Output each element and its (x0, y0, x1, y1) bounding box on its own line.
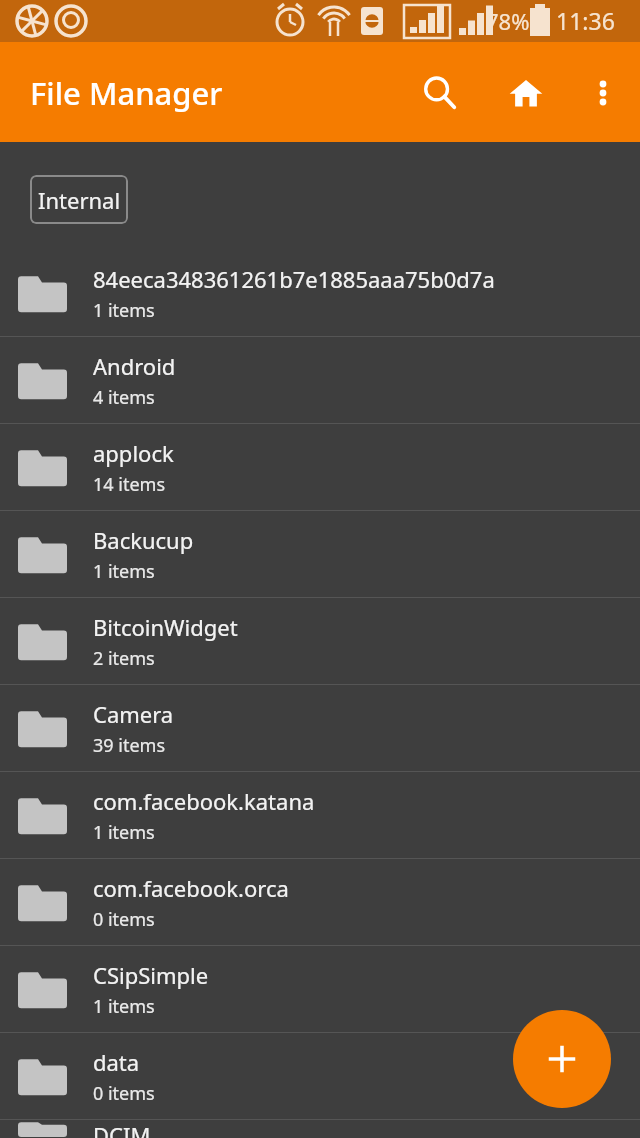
button[interactable]: data (0, 1033, 640, 1119)
staticText: 0 items (93, 907, 155, 932)
staticText: 84eeca348361261b7e1885aaa75b0d7a (93, 264, 495, 294)
button[interactable]: Add (513, 1010, 611, 1108)
staticText: Internal (38, 185, 121, 215)
staticText: 4 items (93, 385, 155, 410)
staticText: data (93, 1047, 140, 1077)
button[interactable]: 84eeca348361261b7e1885aaa75b0d7a (0, 250, 640, 336)
staticText: 2 items (93, 646, 155, 671)
button[interactable]: com.facebook.katana (0, 772, 640, 858)
button[interactable]: DCIM (0, 1120, 640, 1138)
button[interactable]: Backucup (0, 511, 640, 597)
staticText: 11:36 (556, 5, 615, 36)
staticText: com.facebook.orca (93, 873, 289, 903)
staticText: BitcoinWidget (93, 612, 238, 642)
staticText: 14 items (93, 472, 166, 497)
button[interactable]: Internal (30, 175, 128, 224)
staticText: 1 items (93, 820, 155, 845)
button[interactable]: com.facebook.orca (0, 859, 640, 945)
staticText: Android (93, 351, 176, 381)
staticText: Camera (93, 699, 174, 729)
staticText: 1 items (93, 559, 155, 584)
button[interactable]: More options (575, 65, 631, 121)
button[interactable]: BitcoinWidget (0, 598, 640, 684)
staticText: 1 items (93, 298, 155, 323)
staticText: CSipSimple (93, 960, 209, 990)
button[interactable]: Search (412, 65, 468, 121)
staticText: applock (93, 438, 174, 468)
staticText: 0 items (93, 1081, 155, 1106)
staticText: 39 items (93, 733, 166, 758)
staticText: Backucup (93, 525, 194, 555)
staticText: com.facebook.katana (93, 786, 315, 816)
staticText: 78% (486, 6, 530, 36)
button[interactable]: CSipSimple (0, 946, 640, 1032)
button[interactable]: Home (498, 65, 554, 121)
staticText: File Manager (30, 72, 223, 114)
staticText: DCIM (93, 1120, 151, 1138)
button[interactable]: applock (0, 424, 640, 510)
button[interactable]: Android (0, 337, 640, 423)
button[interactable]: Camera (0, 685, 640, 771)
staticText: 1 items (93, 994, 155, 1019)
